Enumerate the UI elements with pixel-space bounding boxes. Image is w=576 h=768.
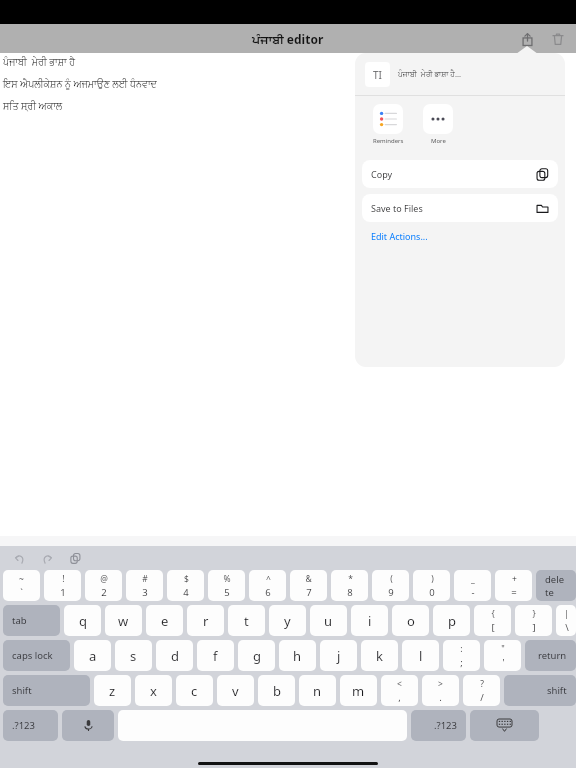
button[interactable]: _	[454, 570, 491, 601]
staticText: 8	[347, 586, 353, 599]
button[interactable]: caps lock	[3, 640, 70, 671]
staticText: k	[376, 647, 383, 665]
staticText: *	[348, 573, 353, 585]
button[interactable]: Undo	[10, 549, 28, 567]
button[interactable]: j	[320, 640, 357, 671]
button[interactable]: Share	[516, 28, 538, 50]
button[interactable]: x	[135, 675, 172, 706]
button[interactable]: Hide keyboard	[470, 710, 539, 741]
button[interactable]: $	[167, 570, 204, 601]
staticText: .	[439, 691, 442, 704]
button[interactable]: (	[372, 570, 409, 601]
button[interactable]: w	[105, 605, 142, 636]
staticText: shift	[547, 684, 567, 697]
button[interactable]: y	[269, 605, 306, 636]
button[interactable]: f	[197, 640, 234, 671]
staticText: ^	[266, 573, 271, 585]
button[interactable]: TI	[355, 53, 565, 95]
button[interactable]: k	[361, 640, 398, 671]
button[interactable]: h	[279, 640, 316, 671]
button[interactable]: ?	[463, 675, 500, 706]
button[interactable]: %	[208, 570, 245, 601]
button[interactable]: Dictate	[62, 710, 114, 741]
button[interactable]: *	[331, 570, 368, 601]
staticText: TI	[373, 68, 382, 82]
button[interactable]: l	[402, 640, 439, 671]
staticText: \	[565, 621, 569, 634]
button[interactable]: &	[290, 570, 327, 601]
staticText: ਪੰਜਾਬੀ editor	[252, 31, 324, 47]
button[interactable]: a	[74, 640, 111, 671]
button[interactable]: return	[525, 640, 576, 671]
button[interactable]: i	[351, 605, 388, 636]
button[interactable]: shift	[3, 675, 90, 706]
button[interactable]: !	[44, 570, 81, 601]
button[interactable]: t	[228, 605, 265, 636]
button[interactable]: o	[392, 605, 429, 636]
button[interactable]: <	[381, 675, 418, 706]
button[interactable]: delete	[536, 570, 576, 601]
button[interactable]: >	[422, 675, 459, 706]
button[interactable]: Redo	[38, 549, 56, 567]
button[interactable]: u	[310, 605, 347, 636]
button[interactable]: r	[187, 605, 224, 636]
staticText: ~	[19, 573, 24, 585]
button[interactable]: Delete	[547, 28, 569, 50]
button[interactable]: g	[238, 640, 275, 671]
button[interactable]: n	[299, 675, 336, 706]
staticText: /	[480, 691, 484, 704]
button[interactable]: s	[115, 640, 152, 671]
button[interactable]: ^	[249, 570, 286, 601]
staticText: #	[142, 573, 148, 585]
button[interactable]: z	[94, 675, 131, 706]
staticText: e	[161, 612, 169, 630]
staticText: @	[100, 573, 108, 585]
button[interactable]: shift	[504, 675, 576, 706]
button[interactable]: b	[258, 675, 295, 706]
button[interactable]: +	[495, 570, 532, 601]
button[interactable]: tab	[3, 605, 60, 636]
staticText: .?123	[12, 719, 35, 732]
button[interactable]: Paste	[66, 549, 84, 567]
staticText: ਸਤਿ ਸ੍ਰੀ ਅਕਾਲ	[3, 99, 63, 112]
staticText: |	[564, 608, 569, 620]
button[interactable]: Reminders	[366, 96, 410, 145]
staticText: n	[313, 682, 322, 700]
staticText: ,	[398, 691, 401, 704]
button[interactable]: :	[443, 640, 480, 671]
button[interactable]: Save to Files	[362, 194, 558, 222]
staticText: 5	[224, 586, 230, 599]
button[interactable]: d	[156, 640, 193, 671]
button[interactable]: Edit Actions...	[371, 230, 428, 242]
staticText: )	[431, 573, 434, 585]
button[interactable]: More	[416, 96, 460, 145]
button[interactable]: #	[126, 570, 163, 601]
staticText: 9	[388, 586, 394, 599]
button[interactable]: p	[433, 605, 470, 636]
staticText: 1	[60, 586, 66, 599]
button[interactable]: m	[340, 675, 377, 706]
staticText: Edit Actions...	[371, 230, 428, 242]
staticText: return	[538, 649, 567, 662]
button[interactable]: Copy	[362, 160, 558, 188]
button[interactable]: .?123	[411, 710, 466, 741]
button[interactable]: .?123	[3, 710, 58, 741]
staticText: 7	[306, 586, 312, 599]
staticText: x	[150, 682, 157, 700]
button[interactable]: |	[556, 605, 576, 636]
button[interactable]: {	[474, 605, 511, 636]
staticText: g	[253, 647, 261, 665]
button[interactable]: e	[146, 605, 183, 636]
staticText: $	[184, 573, 189, 585]
button[interactable]: }	[515, 605, 552, 636]
button[interactable]: v	[217, 675, 254, 706]
button[interactable]: )	[413, 570, 450, 601]
button[interactable]: q	[64, 605, 101, 636]
staticText: ]	[532, 621, 536, 634]
button[interactable]: @	[85, 570, 122, 601]
button[interactable]: c	[176, 675, 213, 706]
button[interactable]: "	[484, 640, 521, 671]
button[interactable]: ~	[3, 570, 40, 601]
staticText: s	[130, 647, 137, 665]
